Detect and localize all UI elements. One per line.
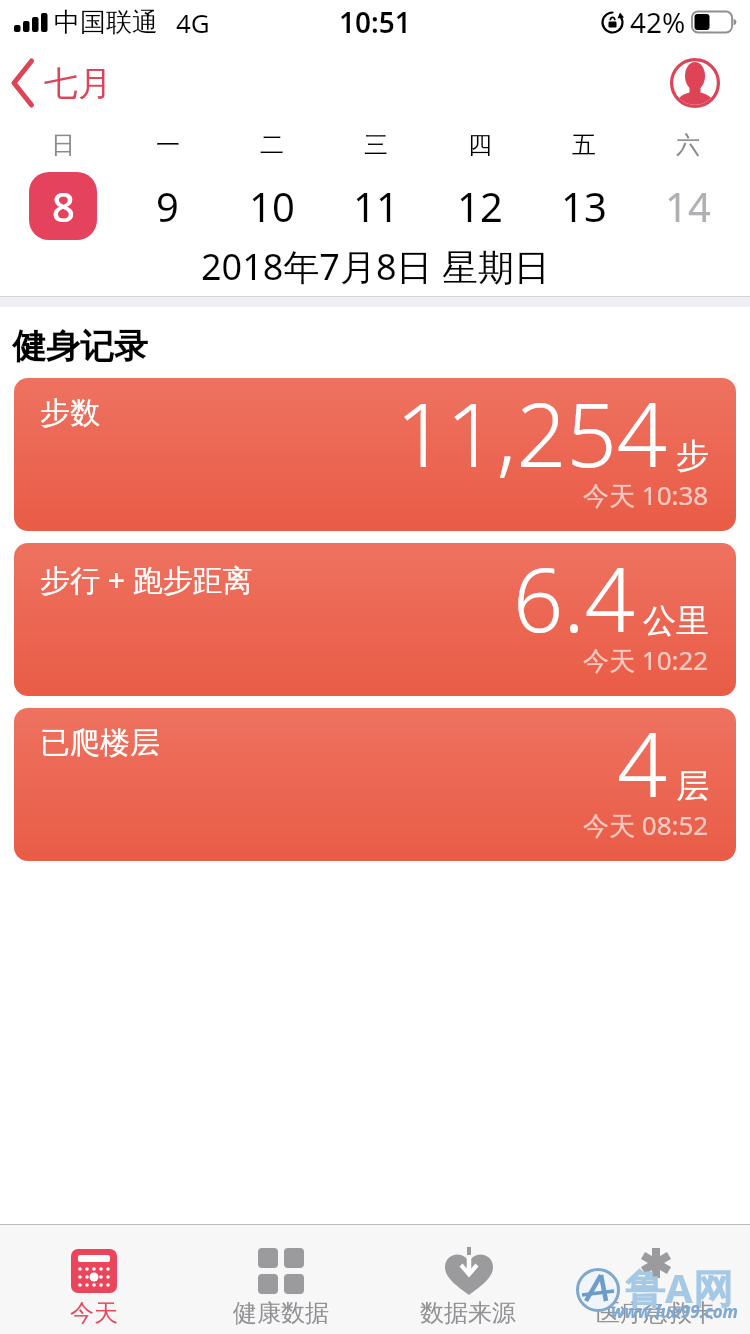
staticText: 2018年7月8日 星期日: [201, 242, 550, 290]
button[interactable]: 已爬楼层: [14, 708, 736, 861]
staticText: 公里: [643, 600, 709, 642]
staticText: 今天 10:38: [583, 477, 709, 513]
staticText: 层: [676, 765, 709, 807]
staticText: 一: [156, 130, 180, 160]
staticText: 今天: [70, 1298, 118, 1328]
button[interactable]: 11: [324, 179, 428, 233]
staticText: 8: [52, 179, 75, 233]
staticText: 12: [457, 179, 503, 233]
staticText: 步: [676, 435, 709, 477]
staticText: 11: [353, 179, 399, 233]
button[interactable]: 14: [636, 179, 740, 233]
button[interactable]: 今天: [0, 1225, 187, 1334]
staticText: 四: [468, 130, 492, 160]
staticText: 日: [51, 130, 75, 160]
staticText: 步数: [40, 394, 100, 432]
staticText: 七月: [44, 62, 112, 105]
staticText: 6.4: [513, 543, 635, 658]
staticText: 42%: [630, 3, 686, 41]
button[interactable]: 步数: [14, 378, 736, 531]
staticText: 数据来源: [420, 1298, 516, 1328]
staticText: 今天 10:22: [583, 642, 709, 678]
button[interactable]: 13: [532, 179, 636, 233]
staticText: 六: [676, 130, 700, 160]
staticText: 中国联通: [54, 6, 158, 39]
staticText: 五: [572, 130, 596, 160]
button[interactable]: 数据来源: [374, 1225, 562, 1334]
staticText: 13: [561, 179, 607, 233]
staticText: 步行 + 跑步距离: [40, 559, 253, 600]
staticText: 10:51: [339, 3, 411, 41]
staticText: 三: [364, 130, 388, 160]
staticText: www.lua99.com: [611, 1300, 738, 1323]
button[interactable]: 9: [115, 179, 220, 233]
staticText: 二: [260, 130, 284, 160]
staticText: 已爬楼层: [40, 724, 160, 762]
button[interactable]: 10: [220, 179, 324, 233]
staticText: 9: [156, 179, 179, 233]
staticText: 10: [249, 179, 295, 233]
button[interactable]: 8: [29, 172, 97, 240]
staticText: 鲁A网: [625, 1260, 733, 1315]
button[interactable]: 12: [428, 179, 532, 233]
staticText: 健身记录: [12, 325, 148, 368]
button[interactable]: 医疗急救卡: [562, 1225, 750, 1334]
staticText: 14: [665, 179, 711, 233]
button[interactable]: 七月: [10, 58, 112, 108]
staticText: 今天 08:52: [583, 807, 709, 843]
staticText: 11,254: [396, 378, 668, 493]
staticText: 医疗急救卡: [596, 1298, 716, 1328]
staticText: 4G: [176, 5, 210, 40]
staticText: 4: [617, 708, 668, 823]
button[interactable]: 步行 + 跑步距离: [14, 543, 736, 696]
button[interactable]: [668, 56, 722, 110]
button[interactable]: 健康数据: [187, 1225, 374, 1334]
staticText: 健康数据: [233, 1298, 329, 1328]
